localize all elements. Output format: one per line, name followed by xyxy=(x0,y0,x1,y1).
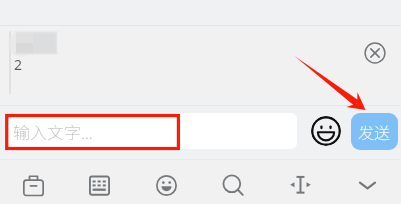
button[interactable]: Keyboard xyxy=(66,160,133,204)
button[interactable]: Emoji xyxy=(311,116,341,146)
button[interactable]: 发送 xyxy=(351,113,398,150)
staticText: 发送 xyxy=(358,120,391,143)
button[interactable]: Collapse xyxy=(334,160,401,204)
button[interactable]: Text tools xyxy=(267,160,334,204)
staticText: 输入文字... xyxy=(13,119,93,144)
staticText: 2 xyxy=(14,55,23,74)
button[interactable]: Close xyxy=(363,41,387,65)
button[interactable]: Attachments xyxy=(0,160,66,204)
button[interactable]: Emoji xyxy=(133,160,200,204)
button[interactable]: Search xyxy=(200,160,267,204)
button[interactable]: 输入文字... xyxy=(9,113,297,149)
